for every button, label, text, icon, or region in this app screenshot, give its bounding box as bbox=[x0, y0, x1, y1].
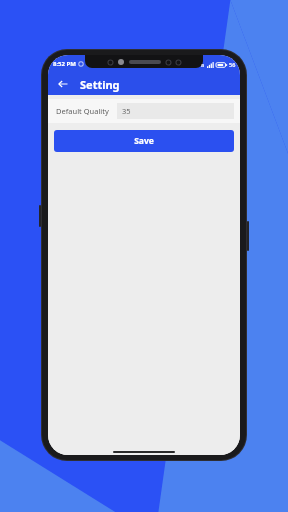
staticText: 56 bbox=[229, 61, 236, 68]
button[interactable]: Default Quality bbox=[48, 99, 240, 123]
staticText: Default Quality bbox=[56, 106, 109, 116]
staticText: 8:52 PM bbox=[53, 60, 76, 68]
button[interactable]: Back bbox=[54, 75, 72, 93]
staticText: Save bbox=[134, 135, 154, 147]
staticText: 35 bbox=[122, 106, 131, 116]
staticText: a bbox=[201, 61, 205, 68]
staticText: Setting bbox=[80, 77, 120, 92]
button[interactable]: Save bbox=[54, 130, 234, 152]
